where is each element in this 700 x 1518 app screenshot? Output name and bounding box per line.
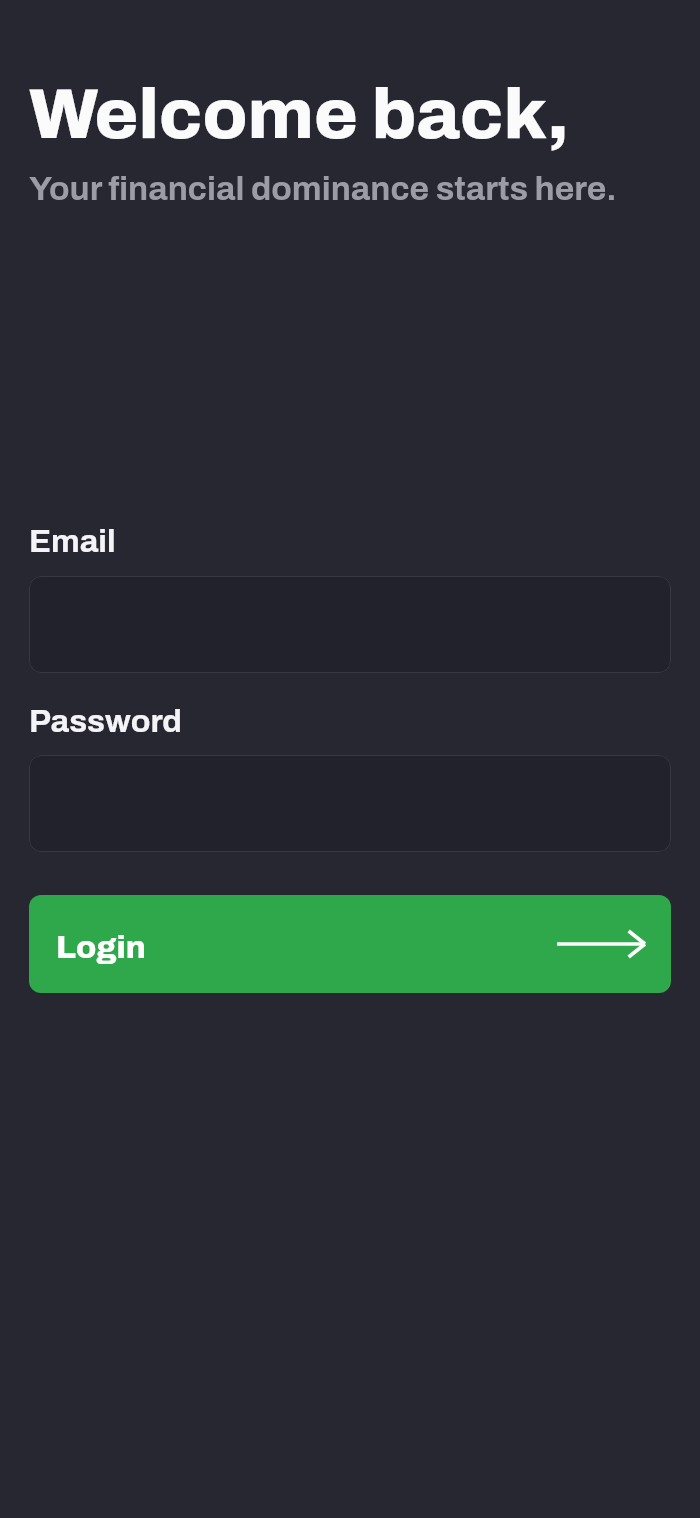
staticText: Password <box>29 704 182 739</box>
staticText: Email <box>29 524 116 559</box>
other: Continue <box>557 929 645 959</box>
button[interactable]: Password input field <box>29 755 671 852</box>
button[interactable]: Login <box>29 895 671 993</box>
staticText: Welcome back, <box>29 76 570 153</box>
button[interactable]: Email input field <box>29 576 671 673</box>
staticText: Your financial dominance starts here. <box>29 171 617 207</box>
staticText: Login <box>56 930 146 965</box>
